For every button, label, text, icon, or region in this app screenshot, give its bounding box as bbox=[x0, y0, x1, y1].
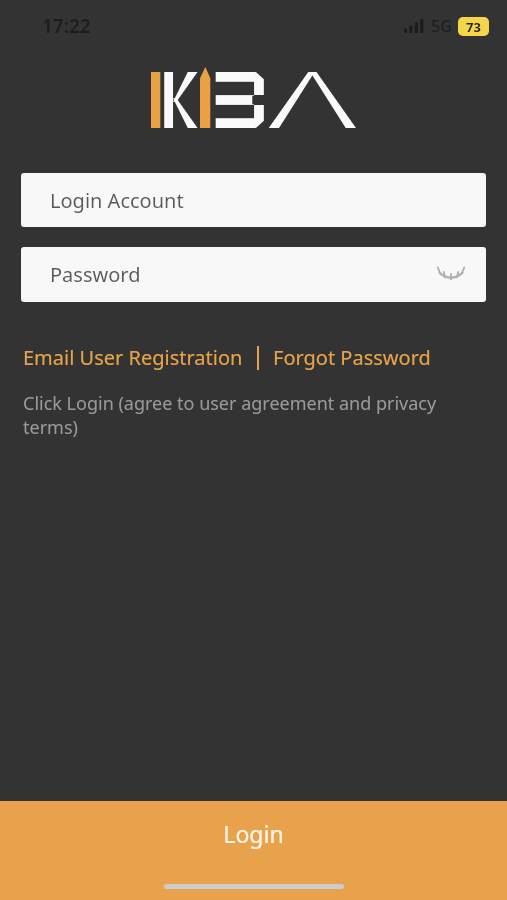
staticText: 5G bbox=[431, 15, 452, 37]
staticText: Forgot Password bbox=[273, 344, 431, 371]
staticText: 73 bbox=[466, 18, 481, 36]
button[interactable]: Email User Registration bbox=[23, 344, 243, 371]
button[interactable]: Forgot Password bbox=[273, 344, 431, 371]
button[interactable]: Show password bbox=[434, 258, 468, 292]
staticText: Click Login (agree to user agreement and… bbox=[23, 391, 483, 439]
staticText: Login Account bbox=[50, 187, 184, 214]
button[interactable]: Password bbox=[21, 247, 486, 302]
staticText: Email User Registration bbox=[23, 344, 243, 371]
button[interactable]: Login bbox=[0, 801, 507, 900]
button[interactable]: Login Account bbox=[21, 173, 486, 227]
staticText: Login bbox=[223, 818, 284, 849]
staticText: 17:22 bbox=[42, 13, 91, 39]
staticText: Password bbox=[50, 261, 141, 288]
